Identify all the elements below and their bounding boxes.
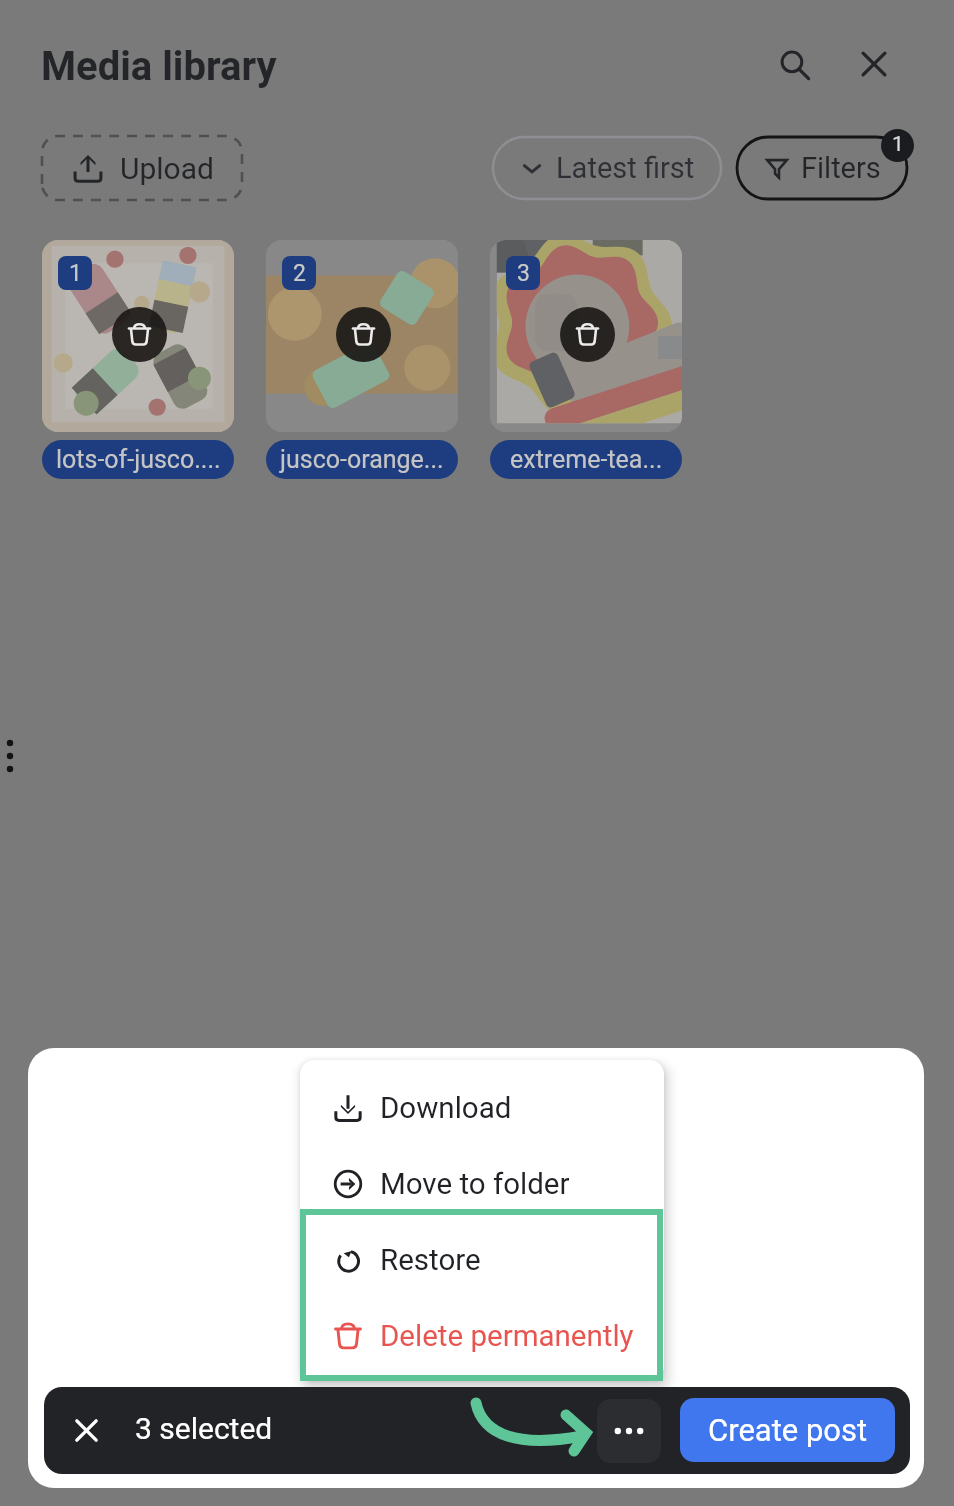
- staticText: Filters: [801, 151, 881, 185]
- button[interactable]: Create post: [680, 1398, 895, 1462]
- button[interactable]: Latest first: [493, 137, 721, 199]
- button[interactable]: 3: [490, 240, 682, 432]
- button[interactable]: Clear selection: [58, 1402, 114, 1458]
- staticText: Restore: [380, 1243, 481, 1278]
- staticText: Create post: [708, 1412, 868, 1448]
- staticText: Latest first: [556, 151, 695, 185]
- staticText: Download: [380, 1091, 512, 1126]
- staticText: 1: [892, 132, 904, 157]
- button[interactable]: More options: [597, 1399, 661, 1463]
- button[interactable]: Delete image 2: [336, 307, 391, 362]
- button[interactable]: Delete image 3: [560, 307, 615, 362]
- button[interactable]: Close: [847, 37, 901, 91]
- button[interactable]: 1: [42, 240, 234, 432]
- staticText: 2: [293, 260, 306, 287]
- staticText: Upload: [120, 151, 214, 186]
- button[interactable]: 2: [266, 240, 458, 432]
- staticText: 1: [69, 260, 82, 287]
- button[interactable]: Delete permanently: [332, 1298, 664, 1374]
- button[interactable]: Download: [332, 1070, 664, 1146]
- button[interactable]: Delete image 1: [112, 307, 167, 362]
- button[interactable]: Filters: [737, 137, 907, 199]
- staticText: extreme-tea...: [510, 445, 663, 474]
- button[interactable]: lots-of-jusco....: [42, 440, 234, 479]
- staticText: 3: [517, 260, 530, 287]
- staticText: Delete permanently: [380, 1319, 634, 1354]
- staticText: 3 selected: [135, 1411, 273, 1446]
- button[interactable]: extreme-tea...: [490, 440, 682, 479]
- button[interactable]: Restore: [332, 1222, 664, 1298]
- staticText: jusco-orange...: [280, 445, 444, 474]
- staticText: lots-of-jusco....: [56, 445, 221, 474]
- button[interactable]: Search: [768, 38, 822, 92]
- staticText: Media library: [41, 43, 277, 90]
- button[interactable]: Upload: [42, 136, 242, 200]
- button[interactable]: Move to folder: [332, 1146, 664, 1222]
- staticText: Move to folder: [380, 1167, 570, 1202]
- button[interactable]: jusco-orange...: [266, 440, 458, 479]
